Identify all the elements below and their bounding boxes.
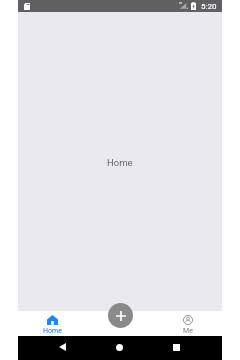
staticText: 5:20 xyxy=(201,2,217,11)
staticText: Home xyxy=(43,327,62,335)
button[interactable]: Recents xyxy=(166,337,186,357)
button[interactable]: Home xyxy=(18,311,86,336)
button[interactable]: Back xyxy=(52,337,72,357)
button[interactable]: Me xyxy=(154,311,222,336)
staticText: Home xyxy=(107,157,133,168)
button[interactable]: Home xyxy=(109,337,129,357)
button[interactable]: Add xyxy=(108,303,133,328)
staticText: Me xyxy=(183,327,193,335)
